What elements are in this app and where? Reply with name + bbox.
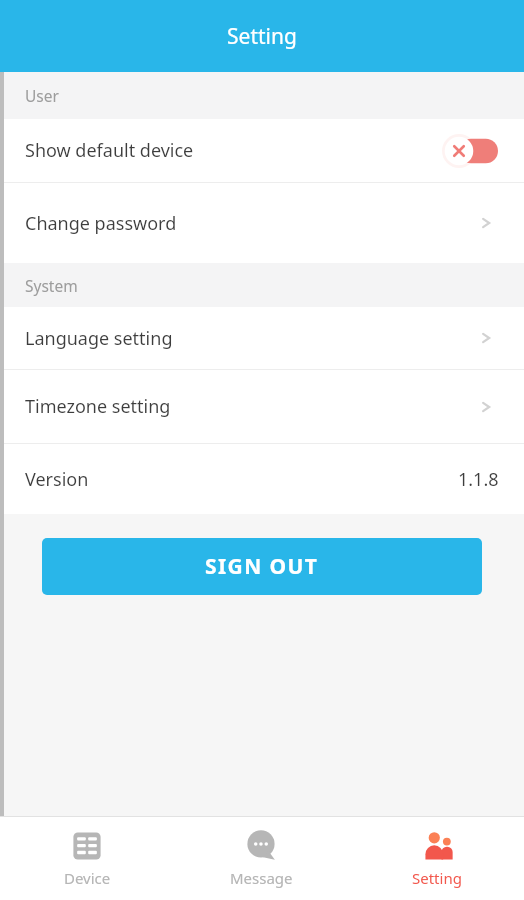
staticText: Timezone setting (25, 394, 171, 419)
staticText: Version (25, 467, 89, 492)
staticText: Setting (227, 22, 297, 51)
staticText: Setting (412, 868, 462, 888)
staticText: Language setting (25, 326, 173, 351)
button[interactable]: Message (174, 817, 349, 900)
button[interactable]: Setting (349, 817, 524, 900)
button[interactable]: Show default device (0, 119, 524, 182)
staticText: SIGN OUT (205, 552, 319, 581)
staticText: Show default device (25, 138, 194, 163)
staticText: User (25, 85, 59, 106)
staticText: Message (230, 868, 293, 888)
staticText: Device (64, 868, 111, 888)
button[interactable]: Change password (0, 183, 524, 263)
button[interactable]: SIGN OUT (42, 538, 482, 595)
staticText: Change password (25, 211, 177, 236)
button[interactable]: Device (0, 817, 174, 900)
staticText: System (25, 275, 78, 296)
staticText: 1.1.8 (458, 467, 499, 492)
button[interactable]: Language setting (0, 307, 524, 369)
button[interactable] (442, 134, 498, 168)
button[interactable]: Timezone setting (0, 370, 524, 443)
